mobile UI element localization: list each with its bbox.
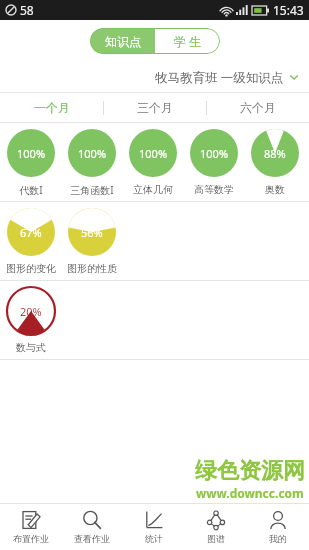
staticText: 六个月 [240, 100, 276, 115]
staticText: 高等数学 [194, 183, 234, 196]
staticText: 56% [81, 225, 103, 240]
button[interactable]: 67% [0, 202, 61, 280]
button[interactable]: 统计 [123, 504, 185, 550]
staticText: 58 [20, 2, 34, 18]
button[interactable]: 我的 [247, 504, 309, 550]
staticText: 15:43 [273, 2, 304, 18]
button[interactable]: 88% [244, 123, 305, 201]
button[interactable]: 牧马教育班 一级知识点 [0, 62, 309, 92]
staticText: 三个月 [137, 100, 173, 115]
staticText: 图形的变化 [6, 262, 56, 275]
button[interactable]: 布置作业 [0, 504, 61, 550]
staticText: 奥数 [265, 183, 285, 196]
staticText: 知识点 [105, 34, 141, 49]
staticText: 立体几何 [133, 183, 173, 196]
staticText: 一个月 [34, 100, 70, 115]
staticText: 绿色资源网 [195, 457, 305, 485]
staticText: 图形的性质 [67, 262, 117, 275]
staticText: 数与式 [16, 341, 46, 354]
staticText: 我的 [269, 533, 287, 544]
staticText: 88% [264, 146, 286, 161]
staticText: 代数I [19, 183, 43, 197]
staticText: 布置作业 [13, 533, 49, 544]
staticText: 100% [139, 146, 168, 161]
button[interactable]: 知识点 [90, 28, 155, 54]
staticText: 学 生 [174, 33, 202, 49]
button[interactable]: 查看作业 [61, 504, 123, 550]
staticText: 100% [17, 146, 46, 161]
button[interactable]: 100% [0, 123, 61, 201]
staticText: 三角函数I [70, 183, 114, 197]
staticText: 20% [20, 304, 42, 319]
button[interactable]: 图谱 [185, 504, 247, 550]
staticText: 牧马教育班 一级知识点 [155, 69, 284, 86]
button[interactable]: 一个月 [0, 93, 103, 122]
button[interactable]: 三个月 [104, 93, 206, 122]
button[interactable]: 56% [61, 202, 122, 280]
staticText: 100% [200, 146, 229, 161]
button[interactable]: 20% [0, 281, 61, 359]
button[interactable]: 100% [61, 123, 122, 201]
button[interactable]: 100% [122, 123, 183, 201]
staticText: 图谱 [207, 533, 225, 544]
button[interactable]: 100% [183, 123, 244, 201]
button[interactable]: 六个月 [207, 93, 309, 122]
staticText: 67% [20, 225, 42, 240]
staticText: 查看作业 [74, 533, 110, 544]
staticText: 100% [78, 146, 107, 161]
button[interactable]: 学 生 [155, 28, 220, 54]
staticText: www.downcc.com [196, 485, 304, 501]
staticText: 统计 [145, 533, 163, 544]
